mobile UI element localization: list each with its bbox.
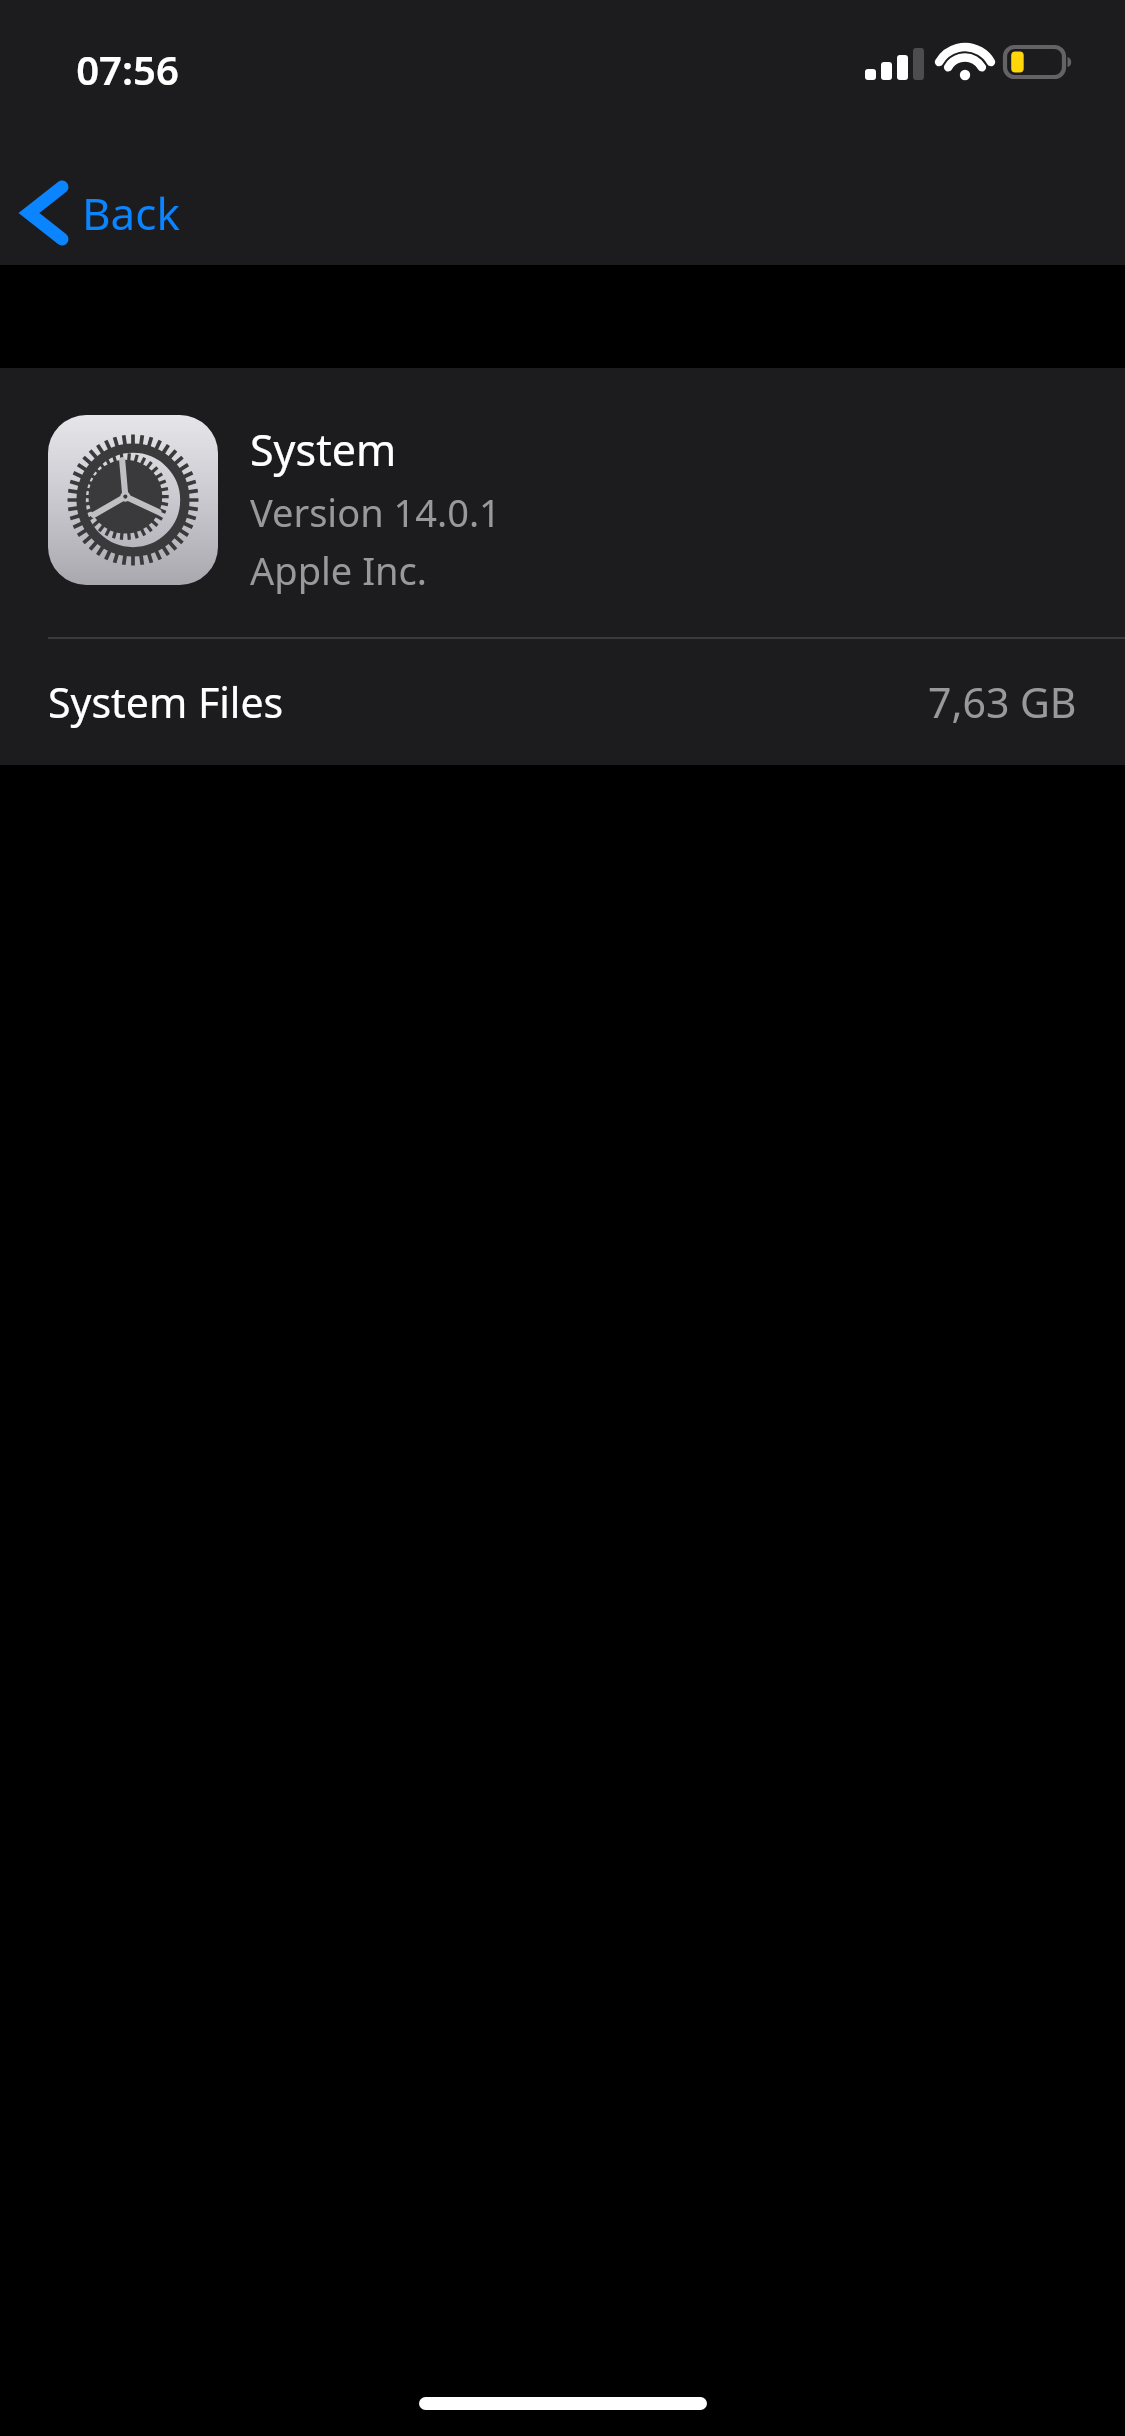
- staticText: Version 14.0.1: [250, 486, 501, 538]
- staticText: Apple Inc.: [250, 544, 427, 596]
- button[interactable]: Back: [0, 161, 208, 265]
- staticText: System Files: [48, 674, 284, 730]
- button[interactable]: System Files: [0, 639, 1125, 765]
- button[interactable]: System: [0, 368, 1125, 637]
- staticText: 07:56: [76, 42, 179, 96]
- staticText: System: [250, 420, 397, 479]
- staticText: 7,63 GB: [928, 674, 1077, 730]
- staticText: Back: [82, 183, 180, 243]
